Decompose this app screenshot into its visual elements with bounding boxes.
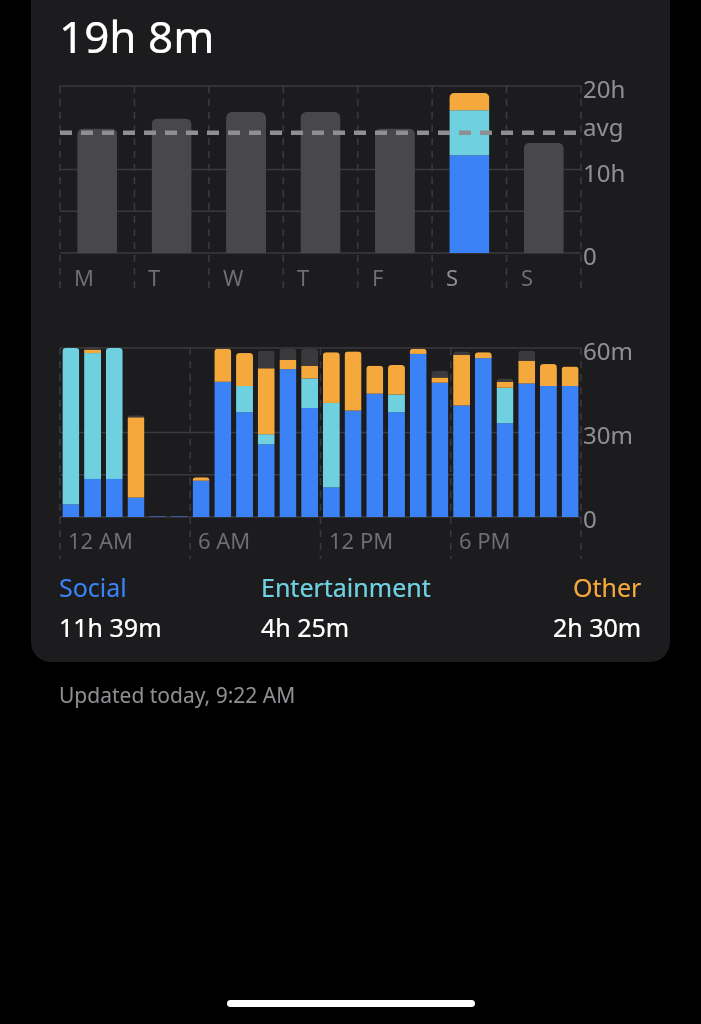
staticText: S	[521, 262, 534, 292]
staticText: Social	[59, 570, 127, 604]
staticText: 60m	[583, 334, 633, 367]
staticText: 12 PM	[329, 525, 394, 555]
staticText: 6 PM	[459, 525, 511, 555]
button[interactable]: Other	[487, 570, 670, 644]
staticText: avg	[583, 110, 624, 143]
staticText: 20h	[583, 72, 626, 105]
staticText: Other	[573, 570, 642, 604]
staticText: M	[74, 262, 94, 292]
staticText: 6 AM	[198, 525, 251, 555]
staticText: Updated today, 9:22 AM	[59, 681, 296, 710]
staticText: T	[297, 262, 310, 292]
staticText: 10h	[583, 156, 626, 189]
staticText: Entertainment	[261, 570, 431, 604]
staticText: T	[148, 262, 161, 292]
staticText: 11h 39m	[59, 610, 162, 644]
button[interactable]: Entertainment	[233, 570, 487, 644]
staticText: 12 AM	[68, 525, 133, 555]
staticText: W	[223, 262, 244, 292]
staticText: 0	[583, 239, 597, 272]
button[interactable]: Social	[31, 570, 233, 644]
staticText: 19h 8m	[59, 6, 215, 66]
staticText: 30m	[583, 418, 633, 451]
staticText: S	[446, 262, 459, 292]
staticText: 2h 30m	[553, 610, 642, 644]
button[interactable]	[31, 0, 670, 662]
staticText: F	[372, 262, 384, 292]
button[interactable]: Weekly screen time chart	[31, 70, 670, 300]
staticText: 4h 25m	[261, 610, 350, 644]
button[interactable]: Hourly screen time chart	[31, 332, 670, 560]
staticText: 0	[583, 502, 597, 535]
